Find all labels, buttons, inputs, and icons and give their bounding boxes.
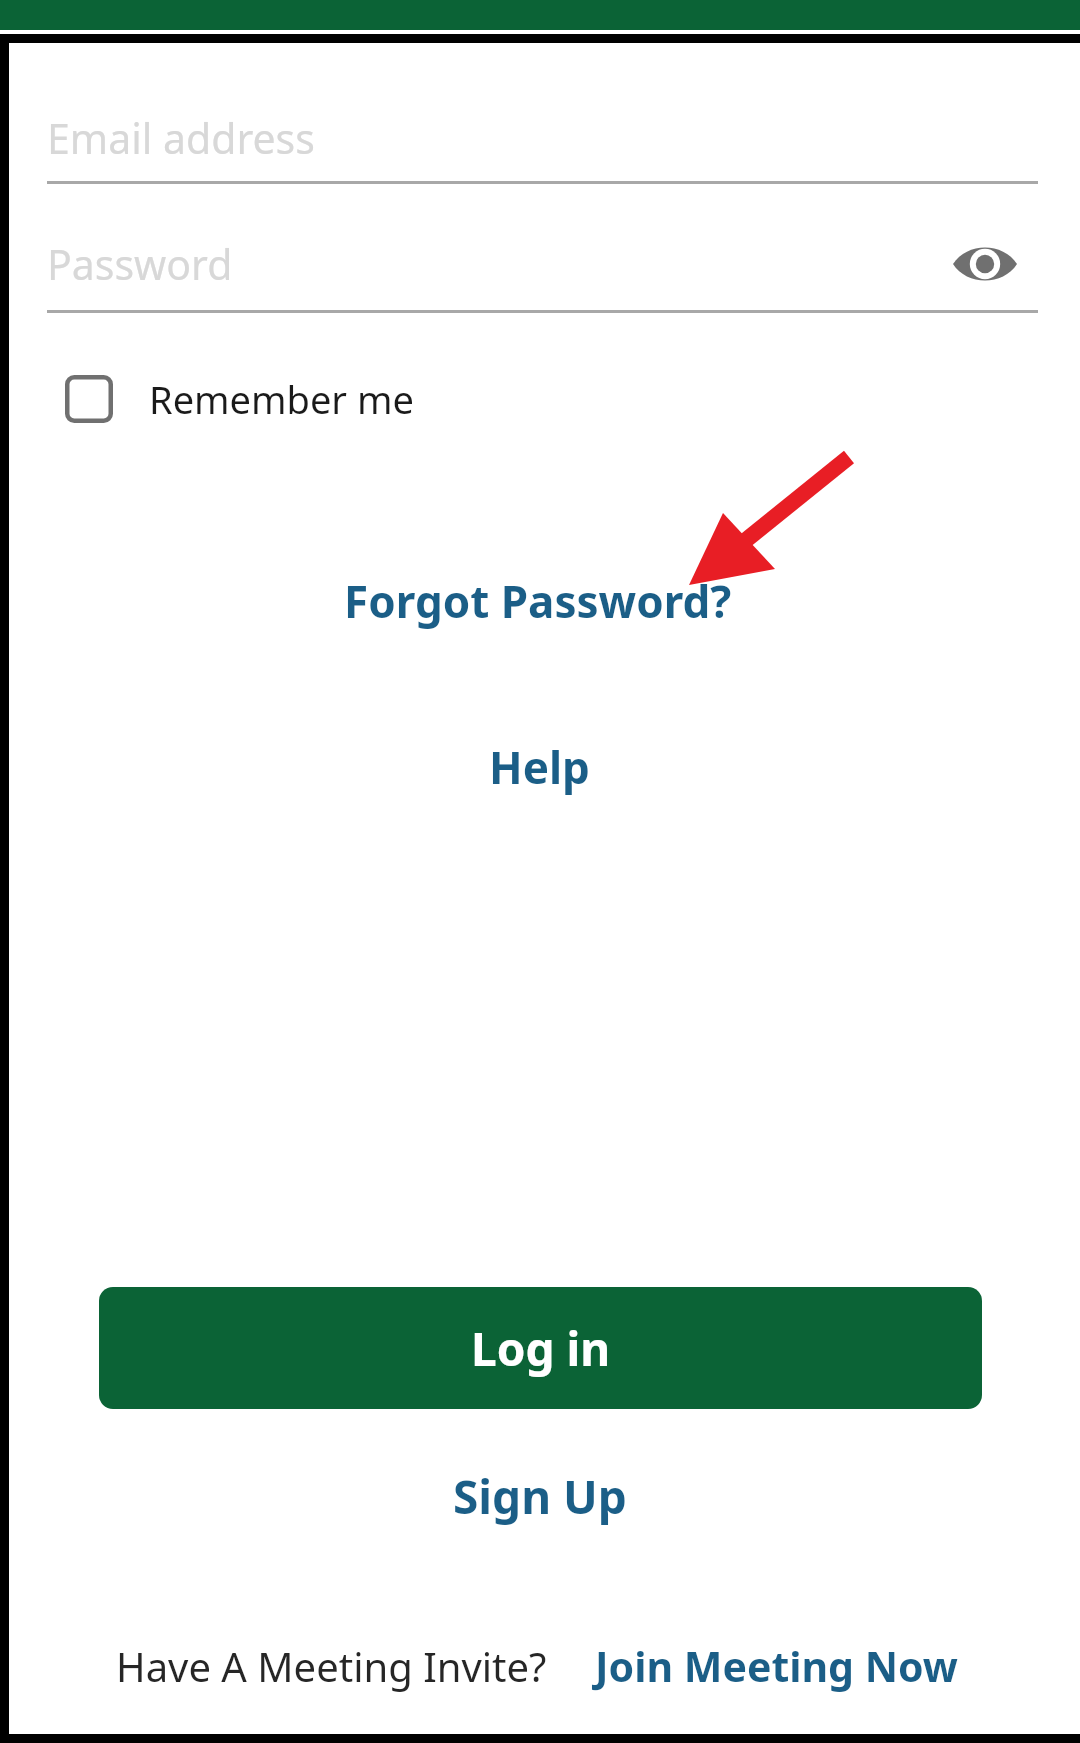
staticText: Email address: [47, 110, 315, 166]
staticText: Help: [489, 737, 590, 797]
button[interactable]: Forgot Password?: [332, 565, 744, 637]
button[interactable]: Email address: [9, 95, 1080, 181]
staticText: Password: [47, 236, 233, 292]
button[interactable]: Remember me: [65, 361, 414, 437]
staticText: Sign Up: [453, 1465, 627, 1528]
staticText: Forgot Password?: [344, 571, 732, 631]
staticText: Join Meeting Now: [595, 1638, 958, 1694]
staticText: Have A Meeting Invite?: [116, 1639, 547, 1693]
button[interactable]: Log in: [99, 1287, 982, 1409]
button[interactable]: Help: [471, 729, 608, 805]
button[interactable]: Password: [9, 218, 1080, 310]
staticText: Remember me: [149, 373, 414, 425]
button[interactable]: Sign Up: [435, 1457, 645, 1536]
button[interactable]: Show password: [946, 225, 1024, 303]
button[interactable]: Join Meeting Now: [589, 1632, 964, 1700]
staticText: Log in: [471, 1317, 611, 1380]
